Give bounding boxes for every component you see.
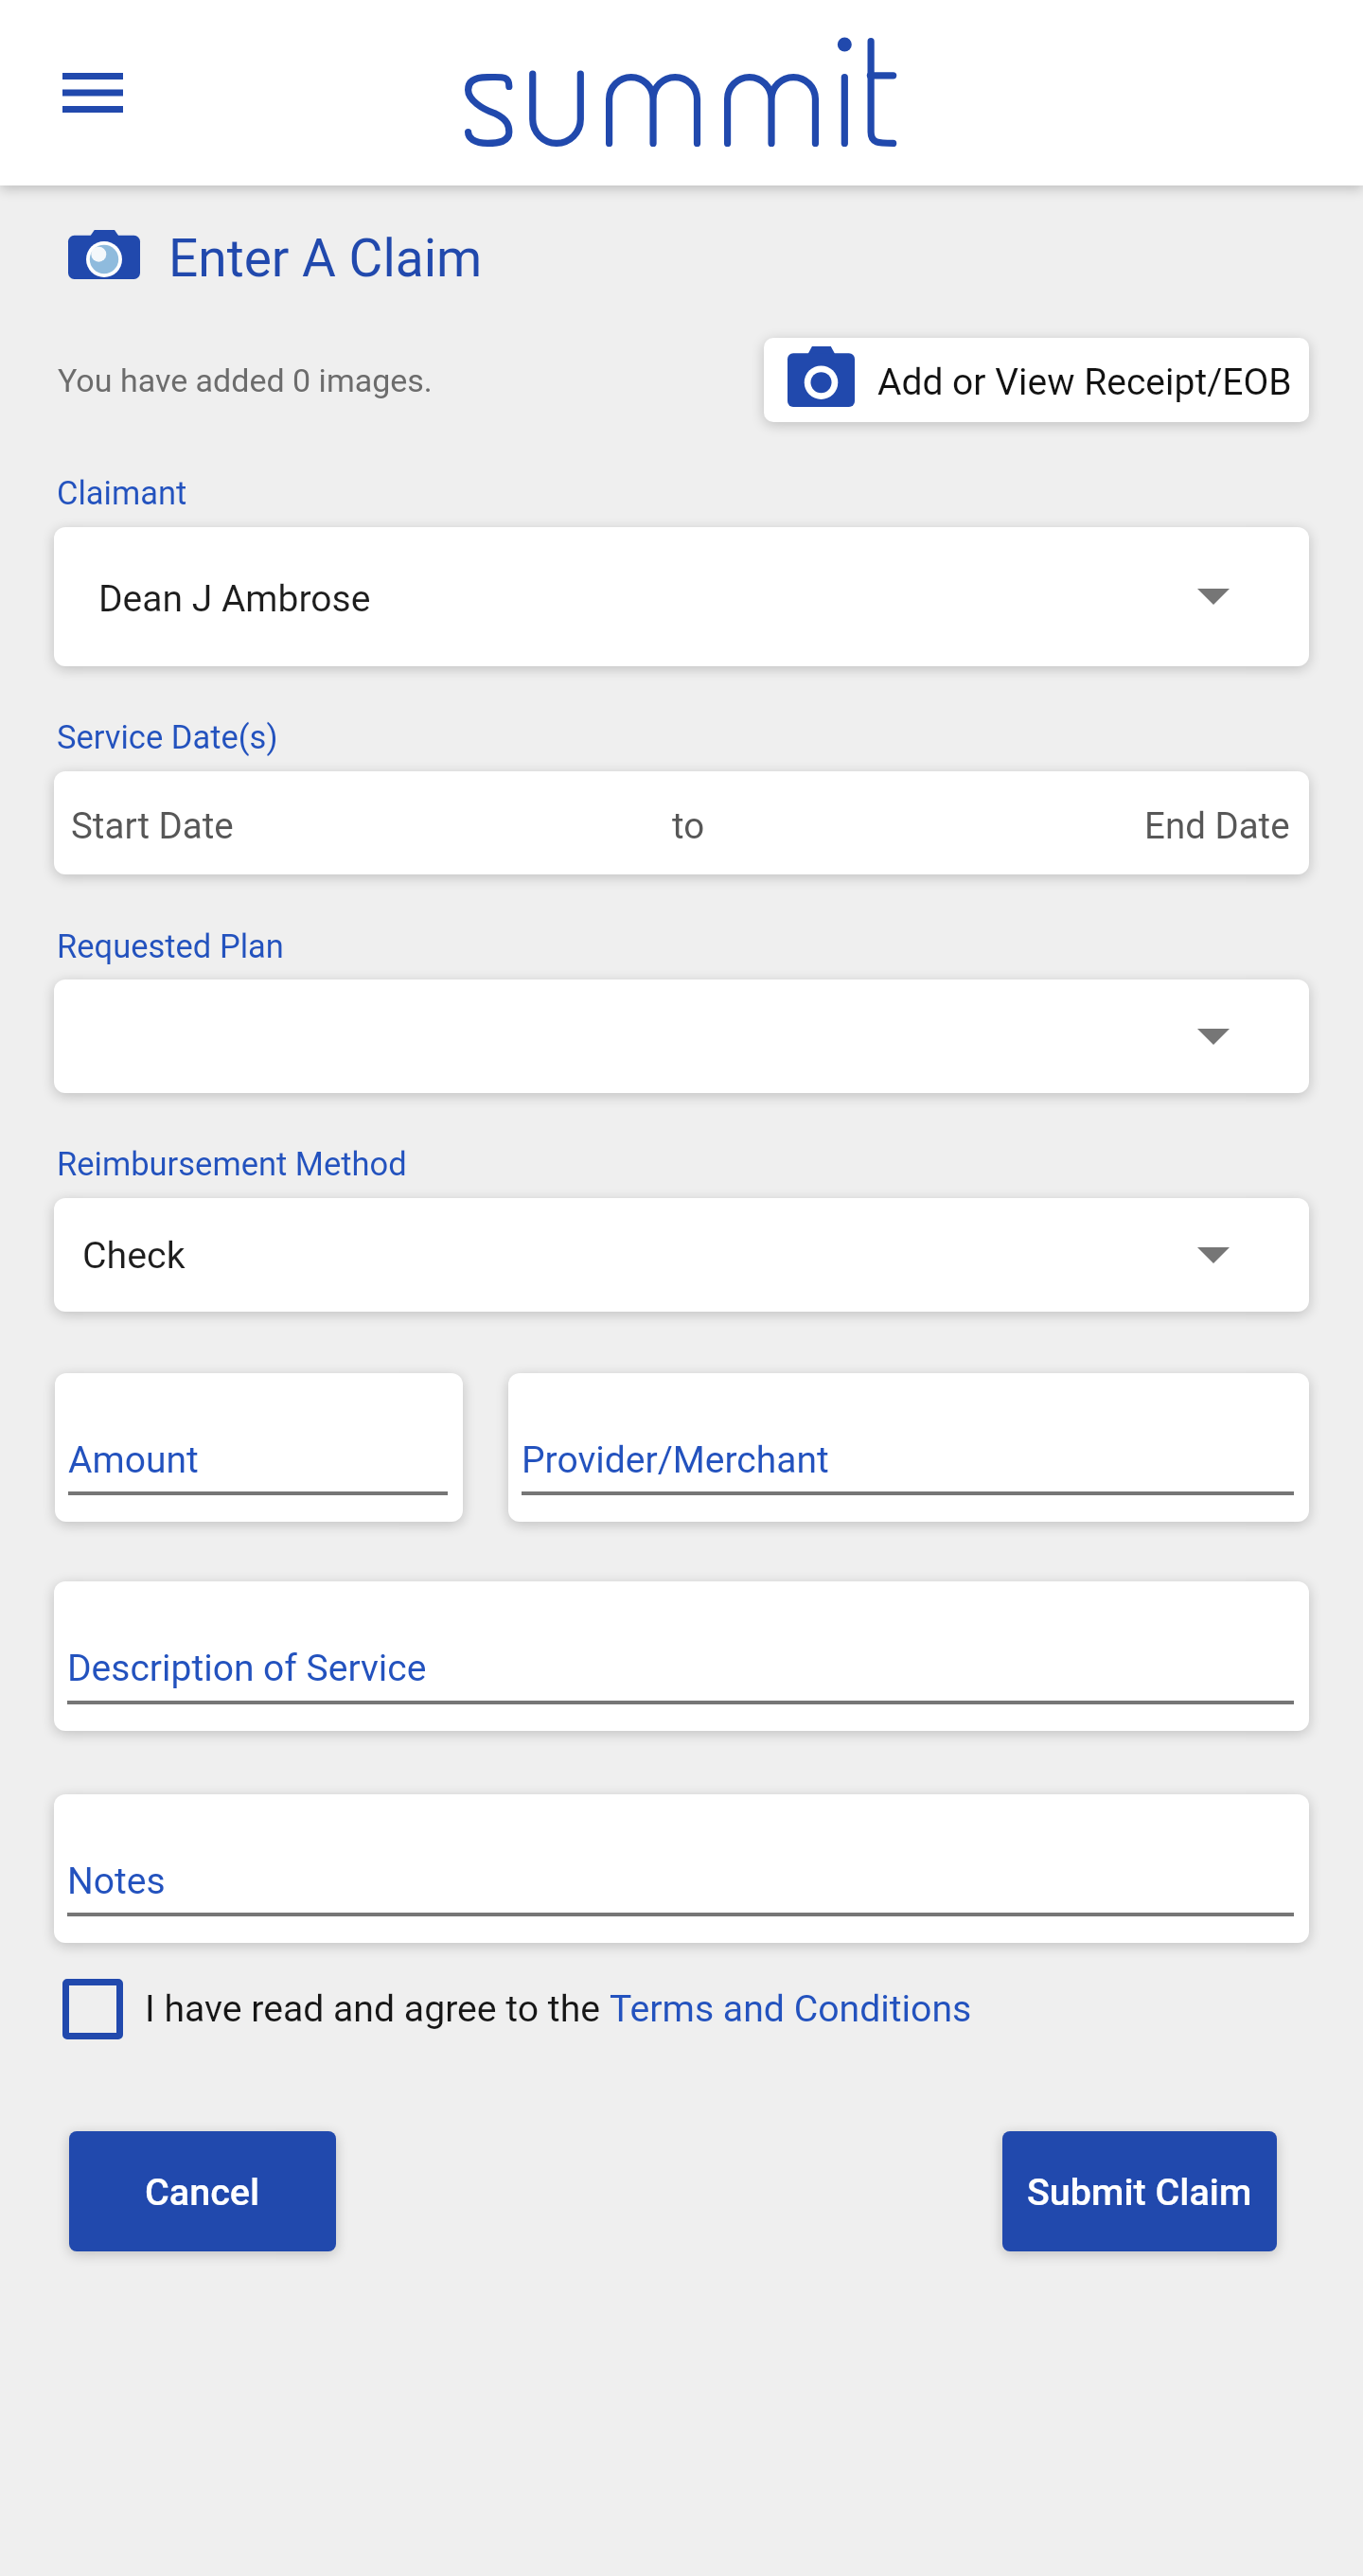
staticText: Submit Claim [1027, 2170, 1252, 2214]
staticText: Provider/Merchant [522, 1438, 829, 1482]
button[interactable]: Check [54, 1198, 1309, 1312]
staticText: Enter A Claim [168, 228, 483, 289]
staticText: Reimbursement Method [57, 1145, 407, 1183]
staticText: Notes [67, 1860, 166, 1903]
staticText: Requested Plan [57, 927, 284, 965]
staticText: to [672, 804, 705, 847]
staticText: Add or View Receipt/EOB [877, 361, 1292, 404]
button[interactable]: Dean J Ambrose [54, 527, 1309, 666]
staticText: Check [82, 1234, 186, 1278]
button[interactable]: Submit Claim [1002, 2131, 1277, 2251]
button[interactable]: Description of Service [54, 1581, 1309, 1731]
button[interactable]: Add or View Receipt/EOB [764, 338, 1309, 422]
button[interactable]: Start Date [54, 771, 1309, 874]
staticText: End Date [1144, 804, 1290, 847]
staticText: Start Date [71, 804, 234, 847]
button[interactable]: Amount [55, 1373, 463, 1522]
button[interactable]: Cancel [69, 2131, 336, 2251]
staticText: Cancel [145, 2170, 260, 2214]
button[interactable]: I have read and agree to the [62, 1979, 972, 2039]
button[interactable]: Open navigation menu [41, 41, 145, 145]
staticText: You have added 0 images. [58, 362, 433, 399]
staticText: I have read and agree to the [145, 1987, 610, 2031]
button[interactable]: Terms and Conditions [610, 1987, 972, 2031]
staticText: Description of Service [67, 1647, 427, 1690]
button[interactable]: Enter A Claim [59, 218, 504, 291]
button[interactable] [54, 979, 1309, 1093]
button[interactable]: Notes [54, 1794, 1309, 1943]
staticText: Claimant [57, 474, 187, 512]
button[interactable]: Provider/Merchant [508, 1373, 1309, 1522]
staticText: Amount [68, 1438, 199, 1482]
staticText: Service Date(s) [57, 718, 278, 756]
staticText: Dean J Ambrose [98, 577, 371, 621]
